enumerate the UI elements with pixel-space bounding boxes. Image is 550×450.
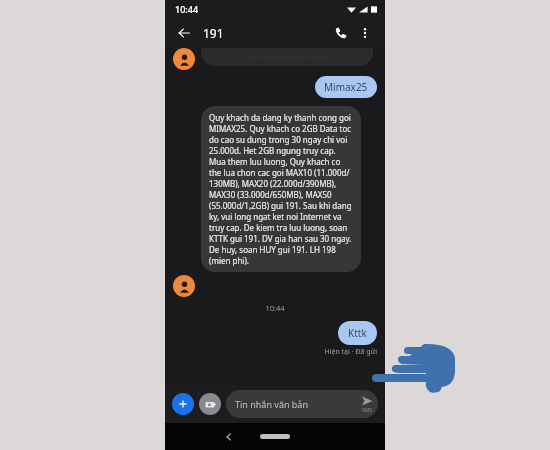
- button[interactable]: More options: [353, 21, 377, 45]
- staticText: Mimax25: [324, 80, 368, 94]
- staticText: SMS: [362, 407, 373, 414]
- staticText: 10:44: [175, 3, 199, 15]
- button[interactable]: Mimax25: [315, 76, 377, 98]
- button[interactable]: Camera: [199, 393, 221, 415]
- button[interactable]: Quy khach da dang ky thanh cong goi MIMA…: [201, 106, 361, 272]
- staticText: 191: [203, 25, 224, 41]
- button[interactable]: nhan de tai ban xem truoc: [201, 48, 373, 66]
- button[interactable]: Add attachment: [172, 393, 194, 415]
- staticText: Tin nhắn văn bản: [235, 398, 308, 410]
- button[interactable]: Home: [260, 434, 290, 439]
- button[interactable]: Tin nhắn văn bản: [226, 390, 378, 418]
- button[interactable]: Back: [219, 427, 239, 447]
- button[interactable]: Back: [173, 22, 195, 44]
- button[interactable]: Call: [329, 21, 353, 45]
- button[interactable]: Kttk: [338, 321, 377, 345]
- staticText: Quy khach da dang ky thanh cong goi MIMA…: [209, 112, 353, 266]
- staticText: 10:44: [173, 303, 377, 313]
- staticText: Kttk: [348, 326, 367, 340]
- staticText: Hiện tại · Đã gửi: [173, 347, 377, 357]
